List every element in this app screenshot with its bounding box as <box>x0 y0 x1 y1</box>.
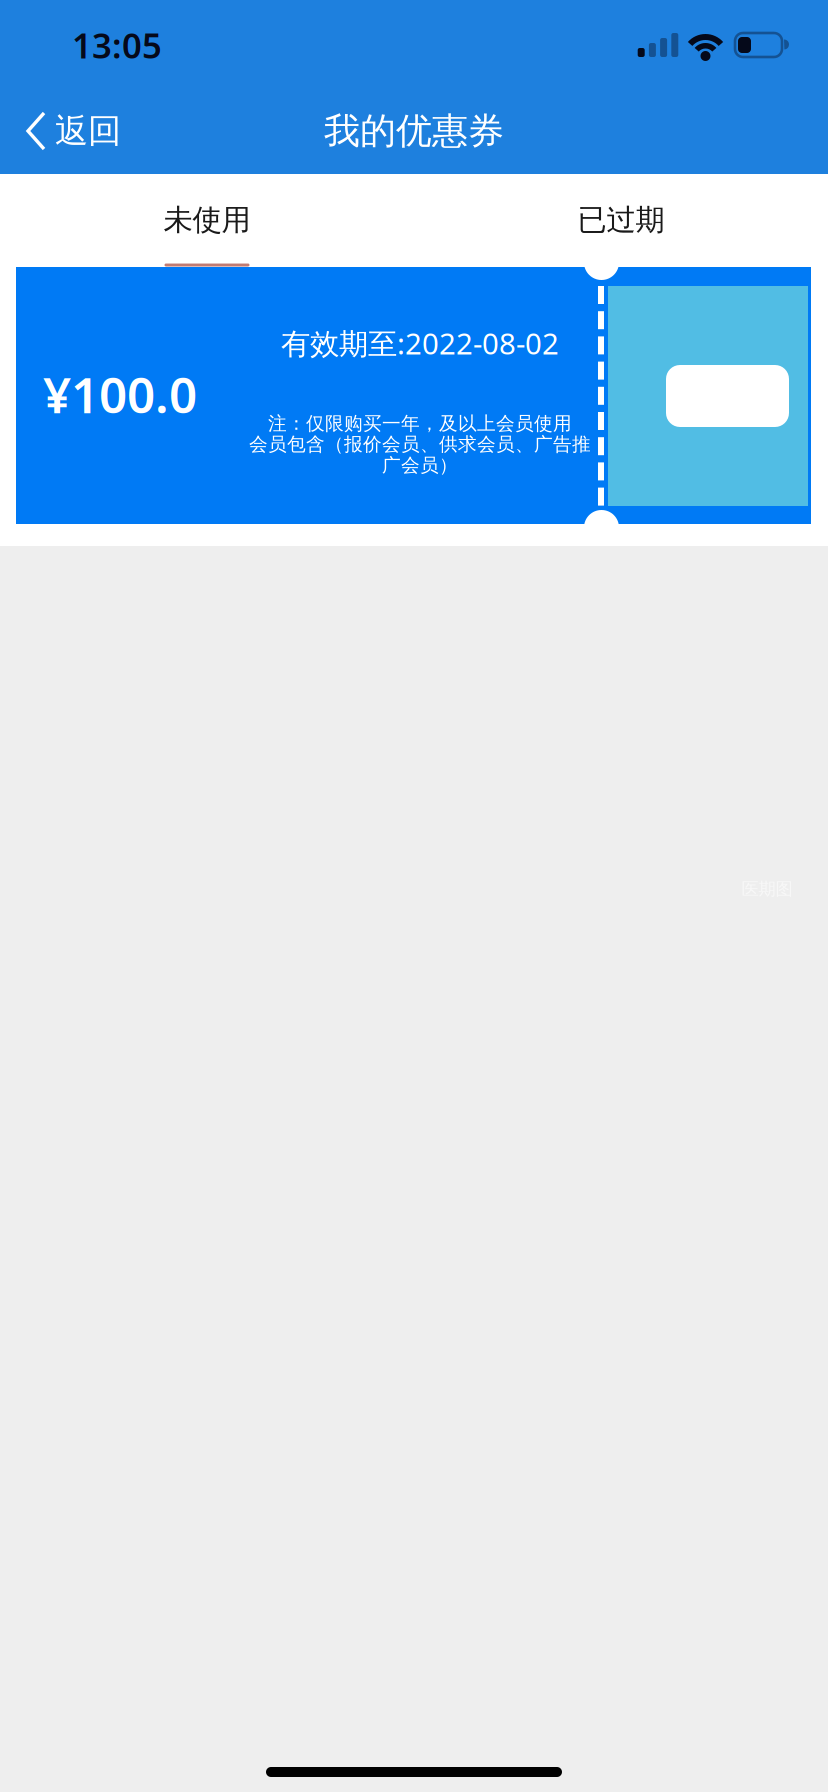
staticText: 13:05 <box>72 22 162 68</box>
staticText: 未使用 <box>163 202 250 238</box>
staticText: 我的优惠券 <box>324 109 504 153</box>
staticText: 注：仅限购买一年，及以上会员使用 <box>268 412 572 435</box>
button[interactable]: 已过期 <box>414 174 828 267</box>
button[interactable]: 返回 <box>0 89 139 173</box>
staticText: ¥100.0 <box>43 361 197 427</box>
button[interactable]: ¥100.0 <box>16 267 811 524</box>
staticText: 有效期至:2022-08-02 <box>281 323 559 362</box>
staticText: 医期图 <box>741 878 792 900</box>
button[interactable]: 未使用 <box>0 174 414 267</box>
staticText: 返回 <box>55 110 121 151</box>
staticText: 广会员） <box>382 454 458 477</box>
staticText: 会员包含（报价会员、供求会员、广告推 <box>249 433 591 456</box>
staticText: 已过期 <box>577 202 664 238</box>
